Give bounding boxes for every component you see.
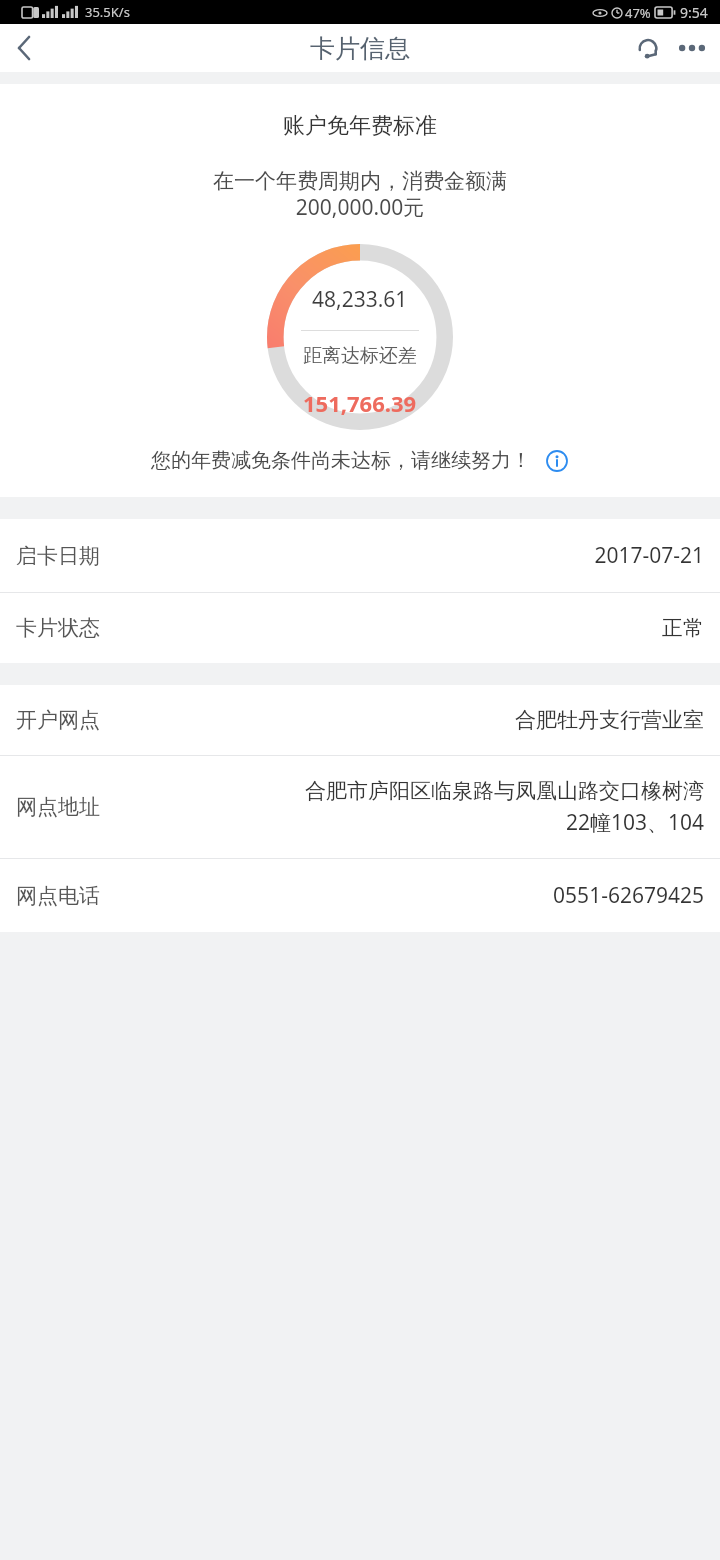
staticText: 网点电话 bbox=[16, 883, 100, 909]
button[interactable]: More options bbox=[670, 26, 714, 70]
staticText: 距离达标还差 bbox=[303, 344, 417, 368]
staticText: 9:54 bbox=[680, 3, 708, 22]
staticText: 您的年费减免条件尚未达标，请继续努力！ bbox=[151, 448, 531, 473]
staticText: 47% bbox=[625, 4, 651, 22]
staticText: 卡片状态 bbox=[16, 615, 100, 641]
staticText: 启卡日期 bbox=[16, 543, 100, 569]
button[interactable]: 卡片状态 bbox=[0, 593, 720, 663]
staticText: 0551-62679425 bbox=[114, 881, 704, 910]
button[interactable]: 网点地址 bbox=[0, 756, 720, 858]
staticText: 开户网点 bbox=[16, 707, 100, 733]
other: Information bbox=[545, 449, 569, 473]
staticText: 账户免年费标准 bbox=[0, 112, 720, 140]
staticText: 卡片信息 bbox=[310, 33, 410, 64]
button[interactable]: Back bbox=[0, 24, 48, 72]
button[interactable]: 启卡日期 bbox=[0, 519, 720, 592]
staticText: 151,766.39 bbox=[303, 388, 417, 418]
staticText: 合肥牡丹支行营业室 bbox=[114, 707, 704, 733]
staticText: 2017-07-21 bbox=[114, 541, 704, 570]
staticText: 35.5K/s bbox=[85, 3, 130, 21]
staticText: 正常 bbox=[114, 615, 704, 641]
button[interactable]: Customer service bbox=[626, 26, 670, 70]
button[interactable]: 开户网点 bbox=[0, 685, 720, 755]
staticText: 在一个年费周期内，消费金额满 200,000.00元 bbox=[0, 168, 720, 222]
button[interactable]: 您的年费减免条件尚未达标，请继续努力！ bbox=[0, 448, 720, 473]
button[interactable]: 网点电话 bbox=[0, 859, 720, 932]
staticText: 网点地址 bbox=[16, 794, 100, 820]
staticText: 合肥市庐阳区临泉路与凤凰山路交口橡树湾 22幢103、104 bbox=[114, 778, 704, 836]
staticText: 48,233.61 bbox=[312, 285, 408, 314]
